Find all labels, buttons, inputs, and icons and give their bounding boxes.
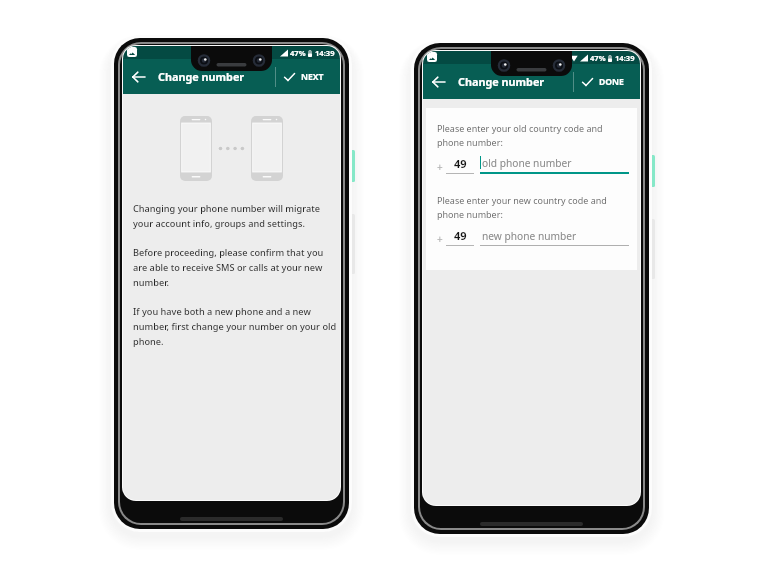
- button[interactable]: Back: [423, 64, 453, 99]
- staticText: Please enter your new country code and p…: [437, 194, 629, 221]
- button[interactable]: NEXT: [276, 59, 340, 94]
- button[interactable]: Back: [123, 59, 153, 94]
- staticText: +: [437, 232, 443, 246]
- staticText: Change number: [158, 69, 245, 84]
- staticText: 47%: [290, 48, 306, 58]
- staticText: old phone number: [482, 156, 572, 170]
- staticText: Changing your phone number will migrate …: [133, 202, 339, 229]
- staticText: NEXT: [301, 71, 324, 83]
- staticText: If you have both a new phone and a new n…: [133, 305, 339, 347]
- staticText: 47%: [590, 53, 606, 63]
- staticText: 14:39: [315, 48, 335, 58]
- button[interactable]: DONE: [574, 64, 640, 99]
- staticText: 14:39: [615, 53, 635, 63]
- staticText: +: [437, 160, 443, 174]
- staticText: Before proceeding, please confirm that y…: [133, 246, 339, 288]
- staticText: new phone number: [482, 229, 577, 243]
- staticText: Change number: [458, 74, 545, 89]
- staticText: 49: [454, 156, 467, 171]
- staticText: DONE: [599, 76, 624, 88]
- staticText: 49: [454, 228, 467, 243]
- staticText: Please enter your old country code and p…: [437, 122, 629, 149]
